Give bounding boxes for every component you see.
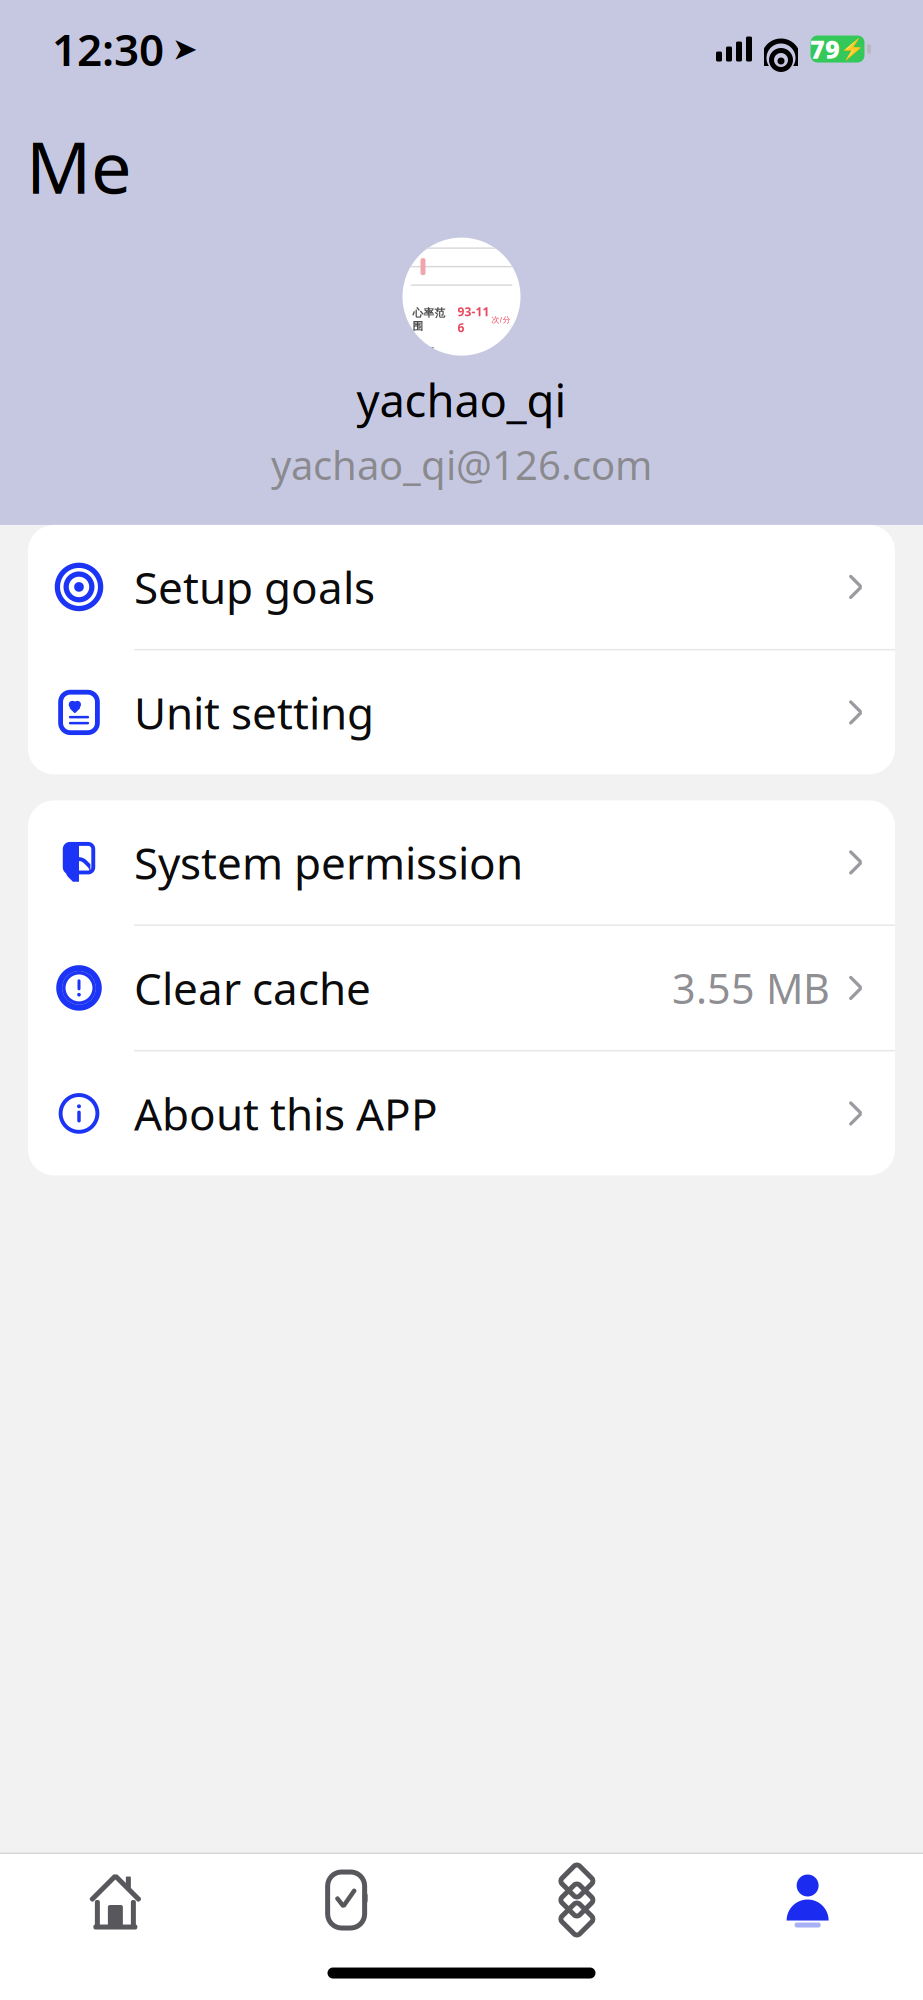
button[interactable]: About this APP [28,1051,895,1175]
staticText: Unit setting [134,683,374,742]
staticText: Setup goals [134,558,375,616]
button[interactable]: System permission [28,800,895,924]
staticText: ⚡ [840,38,865,60]
staticText: 3.55 MB [672,960,830,1015]
button[interactable]: Clear cache [28,926,895,1050]
staticText: Clear cache [134,959,371,1017]
staticText: 93-116 [457,304,489,335]
button[interactable]: Plan [231,1854,462,1946]
button[interactable]: Unit setting [28,650,895,774]
staticText: 12:30 [52,20,164,78]
staticText: About this APP [134,1084,438,1143]
button[interactable]: Home [0,1854,231,1946]
staticText: System permission [134,833,523,892]
staticText: 心率 [412,345,434,359]
staticText: 次/分 [489,314,510,325]
staticText: 79 [810,32,840,66]
button[interactable]: Data [461,1854,692,1946]
button[interactable]: Setup goals [28,525,895,649]
staticText: yachao_qi@126.com [271,438,652,491]
staticText: 心率范围 [412,306,445,333]
staticText: Me [26,118,132,214]
staticText: yachao_qi [356,370,566,430]
button[interactable]: Me [692,1854,923,1946]
staticText: ➤ [172,32,198,66]
